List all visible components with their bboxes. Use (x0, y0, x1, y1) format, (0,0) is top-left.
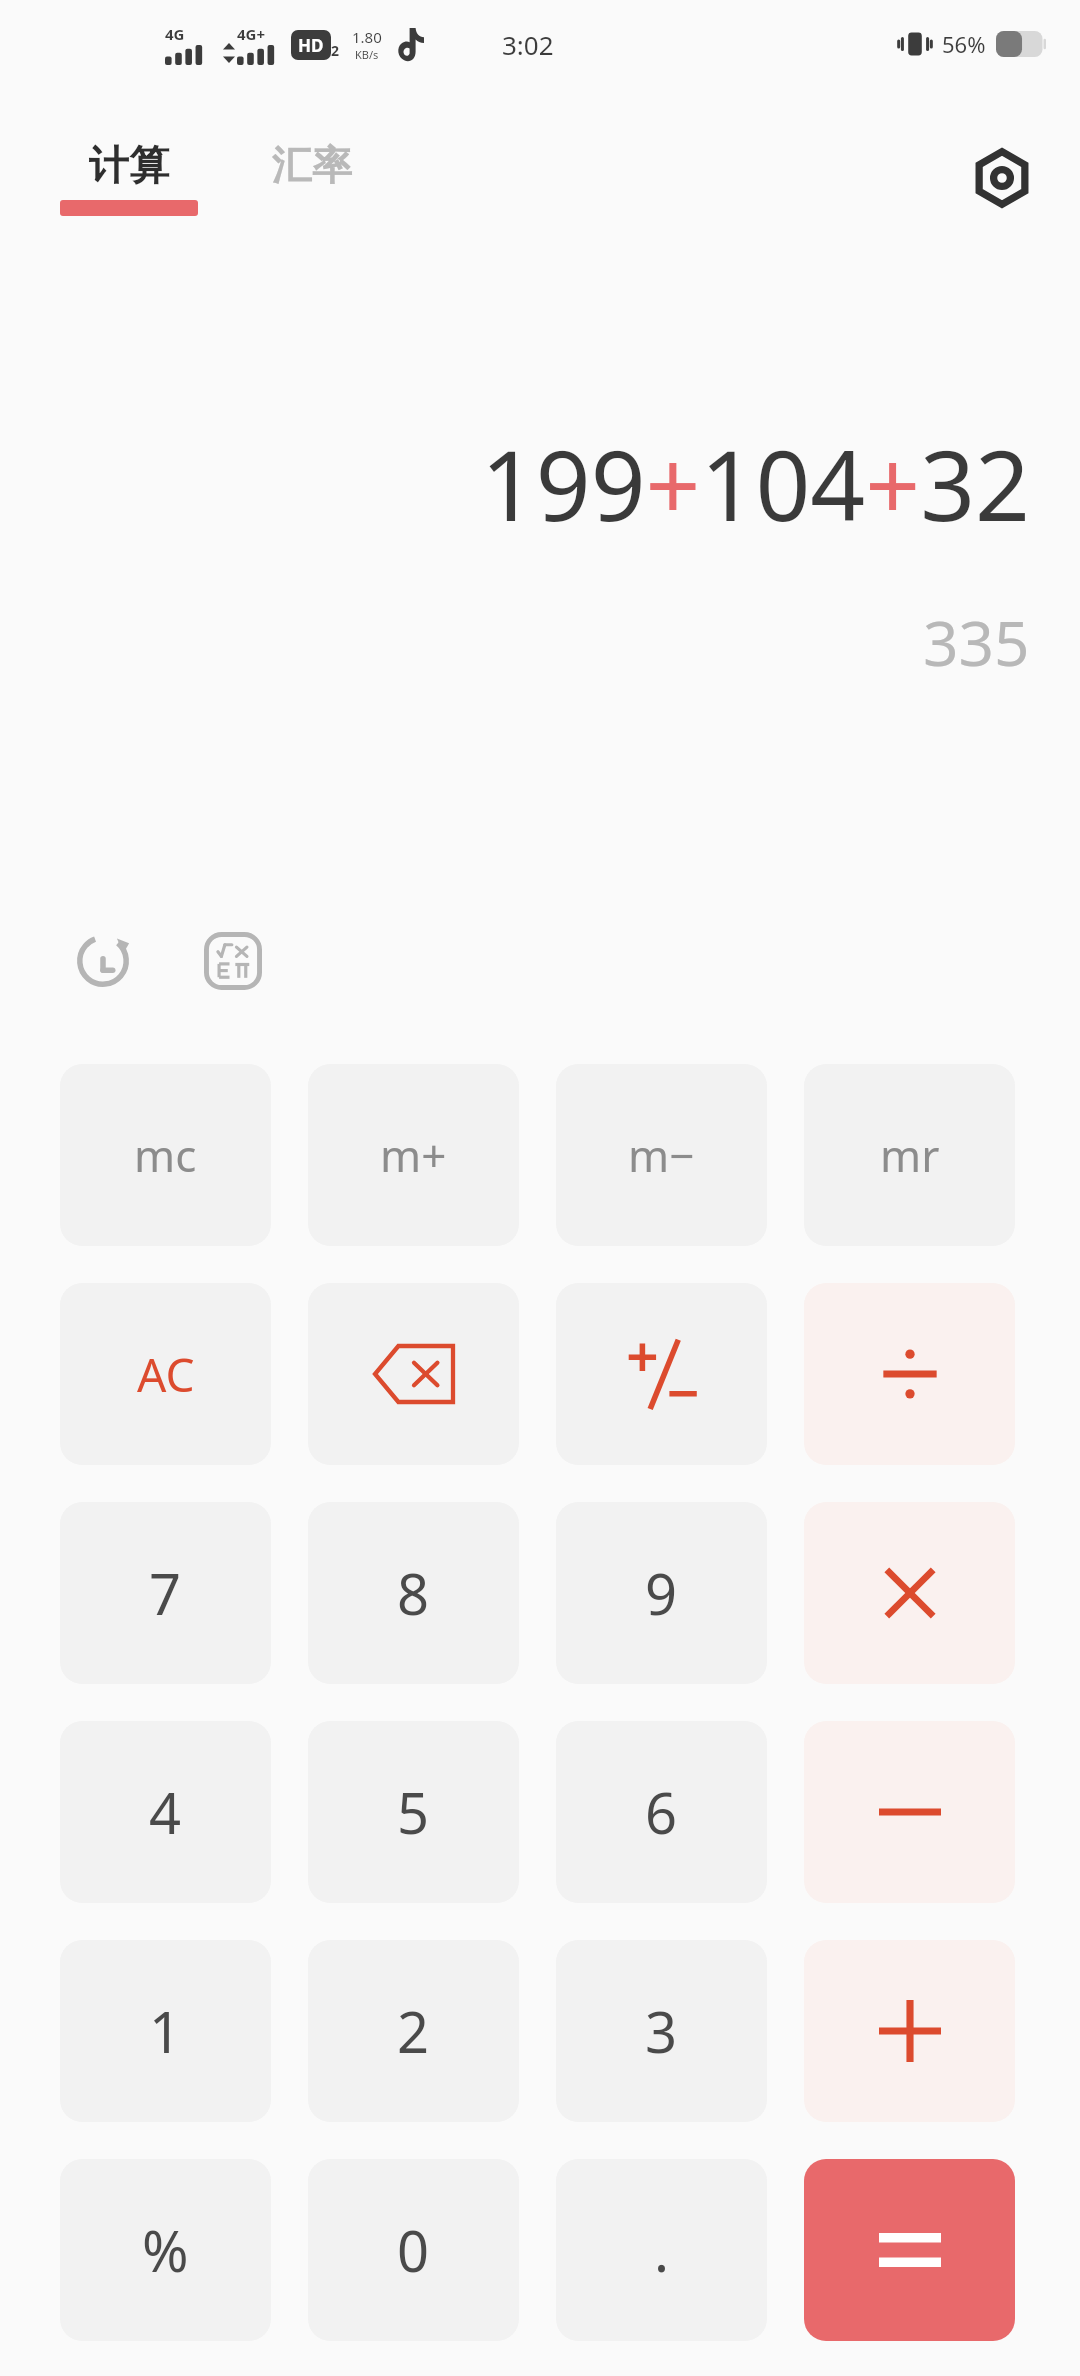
button[interactable]: 6 (556, 1721, 767, 1903)
button[interactable]: History (60, 918, 146, 1004)
button[interactable]: 4 (60, 1721, 271, 1903)
staticText: mr (880, 1125, 940, 1185)
staticText: 0 (397, 2212, 430, 2288)
button[interactable]: 1 (60, 1940, 271, 2122)
staticText: 9 (645, 1555, 678, 1631)
staticText: % (142, 2212, 189, 2288)
button[interactable] (804, 1283, 1015, 1465)
staticText: 3:02 (502, 27, 554, 62)
staticText: 5 (397, 1774, 430, 1850)
staticText: 4G+ (237, 24, 266, 44)
staticText: 4 (149, 1774, 182, 1850)
button[interactable]: 3 (556, 1940, 767, 2122)
staticText: 1.80 (352, 27, 382, 47)
button[interactable]: Plus minus (556, 1283, 767, 1465)
button[interactable]: % (60, 2159, 271, 2341)
staticText: 335 (923, 600, 1030, 684)
staticText: m+ (380, 1125, 447, 1185)
staticText: 199+104+32 (480, 418, 1030, 549)
button[interactable]: m− (556, 1064, 767, 1246)
button[interactable]: 7 (60, 1502, 271, 1684)
staticText: AC (137, 1343, 195, 1406)
staticText: 56% (942, 29, 986, 59)
staticText: HD (298, 34, 324, 57)
button[interactable]: Scientific (190, 918, 276, 1004)
staticText: KB/s (355, 47, 379, 62)
button[interactable]: . (556, 2159, 767, 2341)
button[interactable]: 计算 (60, 140, 198, 216)
button[interactable]: 2 (308, 1940, 519, 2122)
button[interactable]: Backspace (308, 1283, 519, 1465)
button[interactable] (804, 2159, 1015, 2341)
staticText: 1 (149, 1993, 182, 2069)
button[interactable]: 8 (308, 1502, 519, 1684)
staticText: 7 (149, 1555, 182, 1631)
button[interactable]: mr (804, 1064, 1015, 1246)
button[interactable]: 汇率 (272, 140, 352, 190)
staticText: 3 (645, 1993, 678, 2069)
staticText: 8 (397, 1555, 430, 1631)
button[interactable]: 9 (556, 1502, 767, 1684)
staticText: . (654, 2212, 670, 2288)
button[interactable]: AC (60, 1283, 271, 1465)
staticText: 计算 (89, 140, 169, 190)
button[interactable] (804, 1940, 1015, 2122)
staticText: 2 (397, 1993, 430, 2069)
staticText: 4G (165, 24, 185, 44)
button[interactable]: m+ (308, 1064, 519, 1246)
staticText: 6 (645, 1774, 678, 1850)
button[interactable]: 5 (308, 1721, 519, 1903)
button[interactable]: 0 (308, 2159, 519, 2341)
staticText: m− (628, 1125, 695, 1185)
staticText: 汇率 (272, 140, 352, 190)
button[interactable]: mc (60, 1064, 271, 1246)
staticText: 2 (331, 41, 340, 60)
button[interactable] (804, 1502, 1015, 1684)
button[interactable] (804, 1721, 1015, 1903)
staticText: mc (134, 1125, 197, 1185)
button[interactable]: Settings (968, 144, 1036, 212)
